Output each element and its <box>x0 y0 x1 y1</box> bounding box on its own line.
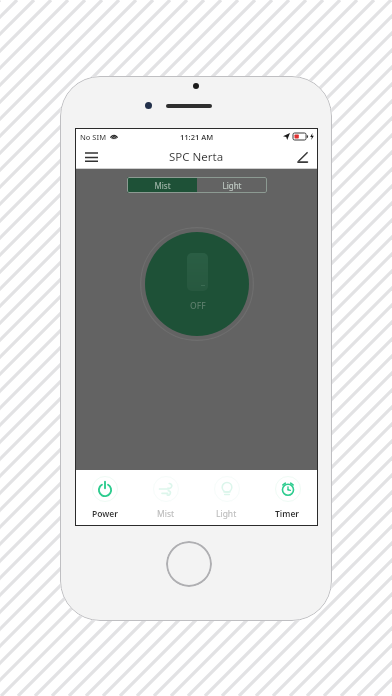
staticText: Mist <box>157 508 175 520</box>
staticText: Timer <box>275 508 300 520</box>
button[interactable]: Edit <box>292 147 312 167</box>
button[interactable]: Timer <box>257 470 318 526</box>
staticText: Power <box>92 508 119 520</box>
button[interactable]: Mist <box>127 177 197 193</box>
staticText: Light <box>216 508 237 520</box>
staticText: Mist <box>154 180 171 191</box>
button[interactable]: Menu <box>81 147 101 167</box>
staticText: 11:21 AM <box>180 132 214 142</box>
button[interactable]: Power toggle, OFF <box>140 227 254 341</box>
staticText: Light <box>222 180 242 191</box>
button[interactable]: Light <box>197 177 267 193</box>
staticText: OFF <box>190 300 206 312</box>
staticText: SPC Nerta <box>169 149 224 165</box>
button[interactable]: Mist <box>135 470 196 526</box>
button[interactable]: Light <box>196 470 257 526</box>
staticText: No SIM <box>80 132 107 142</box>
button[interactable]: Power <box>75 470 135 526</box>
